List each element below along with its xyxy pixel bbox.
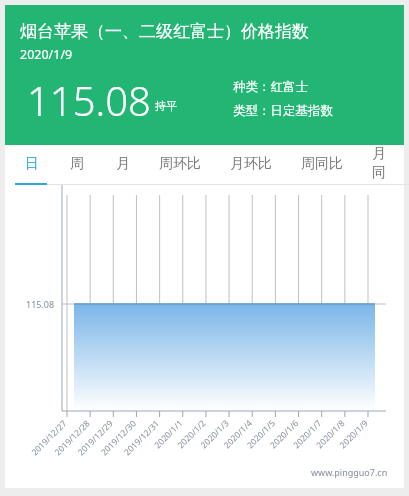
staticText: 周同比: [301, 155, 343, 173]
button[interactable]: 日: [15, 145, 49, 183]
staticText: 类型：日定基指数: [233, 103, 333, 119]
button[interactable]: 周同比: [290, 145, 354, 183]
staticText: 周: [70, 155, 84, 173]
staticText: 烟台苹果（一、二级红富士）价格指数: [20, 21, 309, 42]
staticText: 月: [116, 155, 130, 173]
button[interactable]: 周: [59, 145, 95, 183]
staticText: 月环比: [230, 155, 272, 173]
staticText: 日: [25, 155, 39, 173]
button[interactable]: 周环比: [148, 145, 212, 183]
staticText: 115.08: [27, 73, 151, 127]
staticText: 月同比: [372, 145, 393, 183]
staticText: 2020/1/9: [20, 46, 73, 63]
button[interactable]: 月: [105, 145, 141, 183]
staticText: 种类：红富士: [233, 79, 308, 95]
button[interactable]: 月同比: [361, 145, 404, 183]
staticText: 持平: [155, 99, 177, 113]
staticText: 周环比: [159, 155, 201, 173]
button[interactable]: 月环比: [219, 145, 283, 183]
